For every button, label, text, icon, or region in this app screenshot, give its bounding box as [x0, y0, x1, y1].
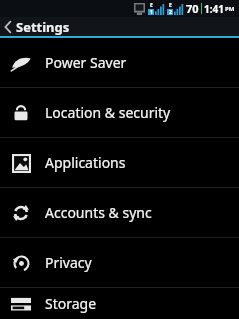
staticText: E [150, 2, 153, 9]
button[interactable]: Storage [0, 288, 239, 319]
staticText: E [169, 2, 172, 9]
button[interactable]: Applications [0, 138, 239, 187]
other: Back [4, 21, 12, 33]
staticText: 1 [150, 9, 153, 15]
staticText: Applications [45, 153, 126, 172]
staticText: Storage [45, 294, 97, 313]
button[interactable]: Power Saver [0, 38, 239, 87]
staticText: Location & security [45, 103, 171, 122]
button[interactable]: Privacy [0, 238, 239, 287]
staticText: Settings [16, 18, 70, 36]
button[interactable]: Back [0, 17, 239, 36]
staticText: Privacy [45, 253, 92, 272]
staticText: Power Saver [45, 53, 127, 72]
staticText: 2 [169, 9, 172, 15]
button[interactable]: Accounts & sync [0, 188, 239, 237]
staticText: 1:41 [204, 2, 224, 16]
staticText: Accounts & sync [45, 203, 152, 222]
staticText: PM [225, 5, 235, 13]
staticText: 70 [186, 1, 199, 16]
button[interactable]: Location & security [0, 88, 239, 137]
